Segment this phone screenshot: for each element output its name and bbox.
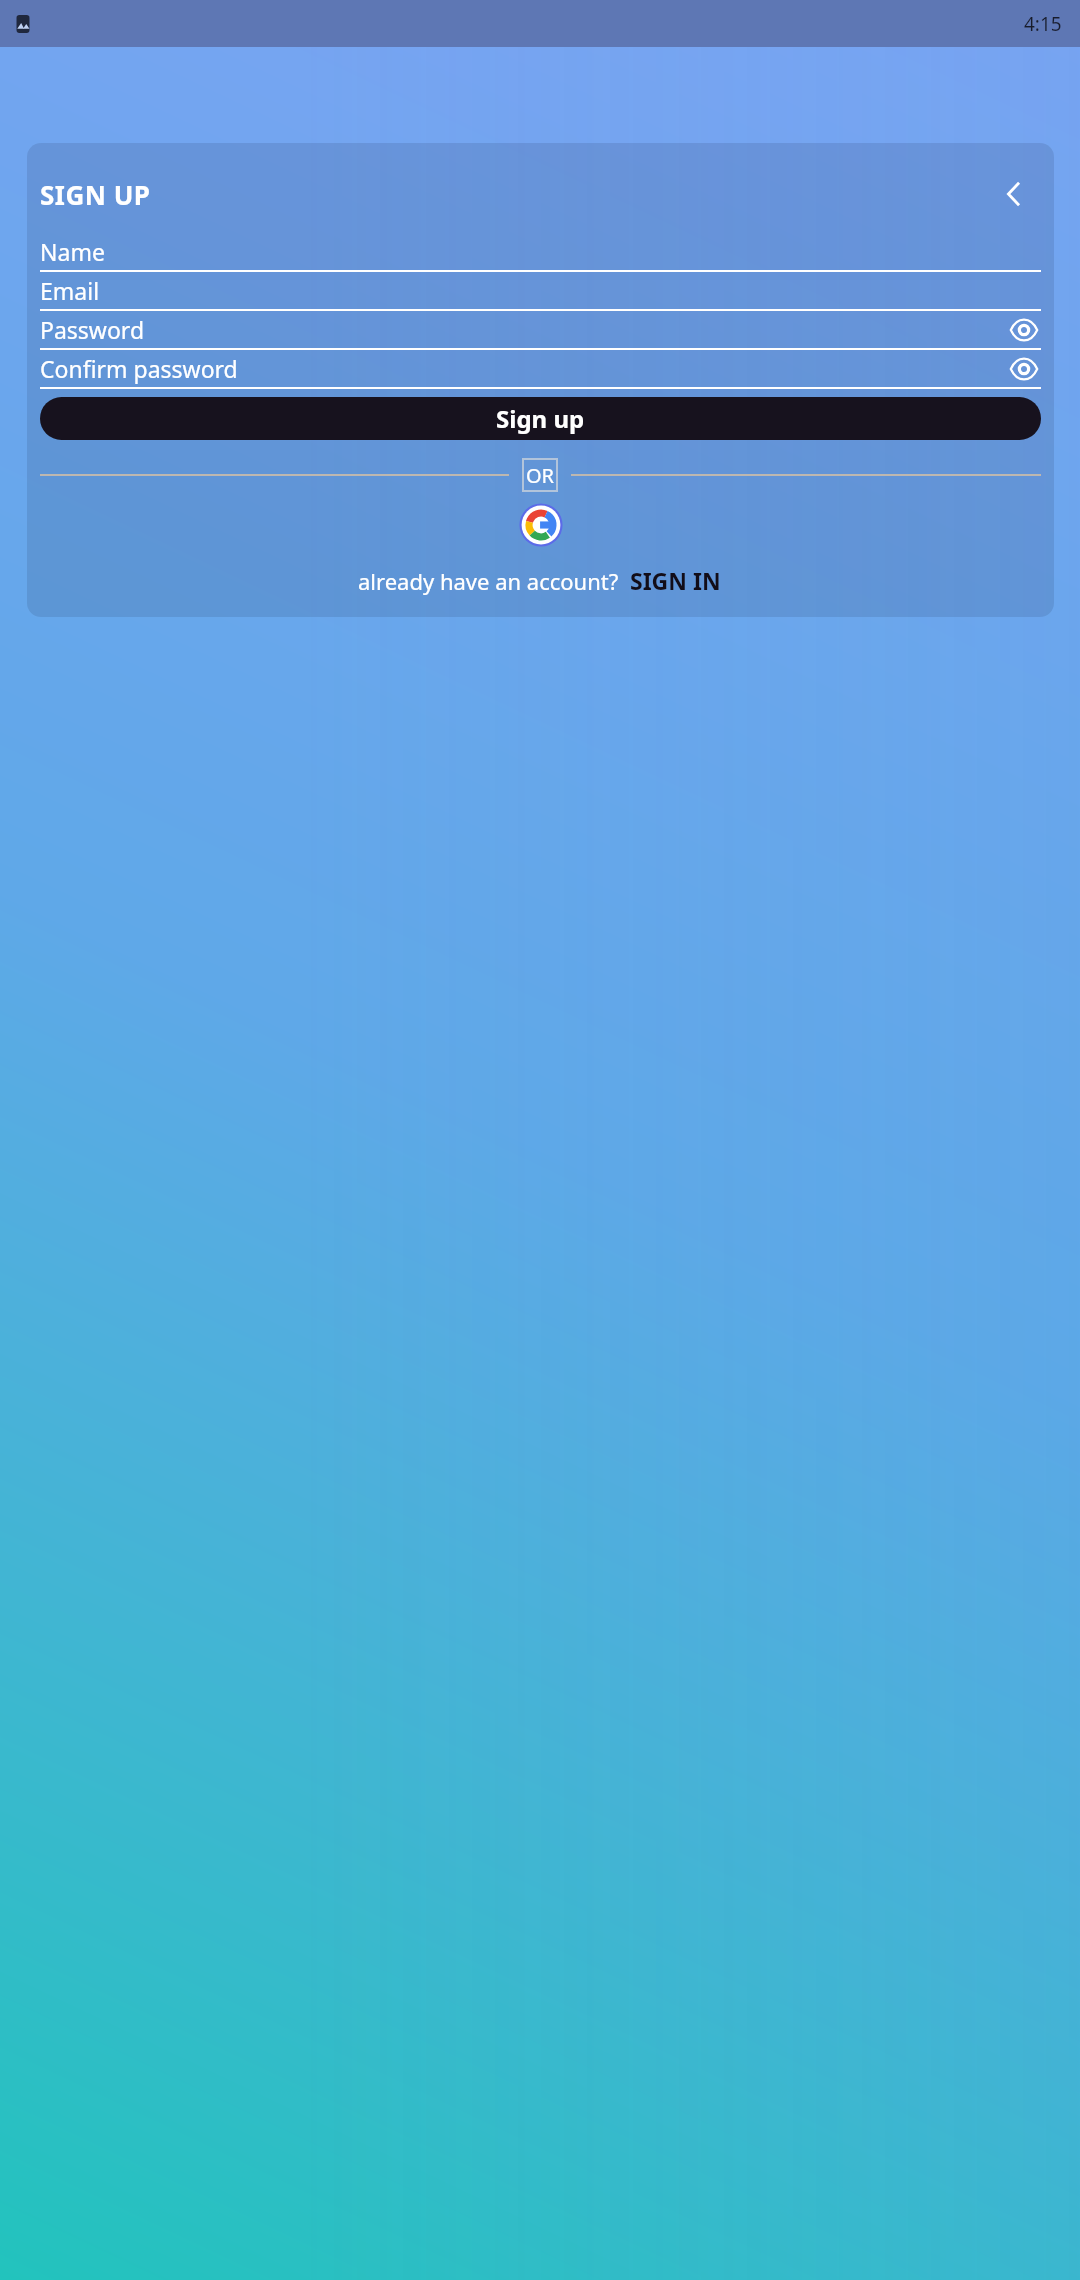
button[interactable]: Show password (1007, 313, 1041, 347)
button[interactable]: Back (994, 174, 1034, 214)
staticText: OR (526, 462, 555, 489)
button[interactable]: Sign up with Google (519, 503, 563, 547)
staticText: Name (40, 236, 105, 267)
staticText: Sign up (496, 402, 585, 435)
button[interactable]: Show password (1007, 352, 1041, 386)
button[interactable]: Name (27, 233, 1054, 272)
staticText: Email (40, 275, 100, 306)
button[interactable]: Confirm password (27, 350, 1054, 389)
button[interactable]: SIGN IN (628, 563, 723, 598)
staticText: SIGN IN (630, 565, 721, 596)
staticText: already have an account? (358, 566, 619, 596)
button[interactable]: Sign up (40, 397, 1041, 440)
button[interactable]: Email (27, 272, 1054, 311)
staticText: Password (40, 314, 145, 345)
button[interactable]: Password (27, 311, 1054, 350)
staticText: 4:15 (1024, 11, 1062, 37)
staticText: Confirm password (40, 353, 238, 384)
staticText: SIGN UP (40, 177, 151, 212)
